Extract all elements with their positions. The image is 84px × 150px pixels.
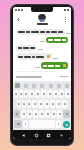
button[interactable] [14, 90, 18, 98]
button[interactable] [56, 100, 61, 108]
button[interactable] [13, 37, 68, 43]
button[interactable] [62, 100, 67, 108]
button[interactable] [33, 110, 38, 118]
button[interactable]: Recent apps [45, 132, 51, 138]
button[interactable] [50, 100, 55, 108]
button[interactable] [38, 100, 43, 108]
button[interactable] [41, 90, 46, 98]
button[interactable] [16, 45, 43, 51]
button[interactable] [19, 90, 23, 98]
button[interactable] [39, 110, 44, 118]
button[interactable]: Back [20, 132, 26, 138]
button[interactable] [14, 120, 22, 128]
button[interactable] [27, 100, 31, 108]
button[interactable] [63, 110, 70, 118]
button[interactable]: Google [15, 83, 20, 88]
button[interactable] [47, 90, 52, 98]
button[interactable] [27, 110, 32, 118]
button[interactable] [16, 29, 71, 35]
button[interactable] [13, 62, 68, 69]
button[interactable] [35, 90, 40, 98]
button[interactable]: Hide keyboard [58, 132, 64, 138]
button[interactable]: Back [15, 16, 22, 23]
button[interactable]: Contact avatar [38, 14, 46, 22]
button[interactable] [23, 120, 28, 128]
button[interactable] [16, 71, 62, 72]
button[interactable] [44, 100, 49, 108]
button[interactable] [45, 110, 50, 118]
button[interactable] [16, 72, 68, 81]
button[interactable] [56, 120, 61, 128]
button[interactable] [17, 100, 21, 108]
button[interactable] [32, 100, 37, 108]
button[interactable] [16, 53, 58, 60]
button[interactable] [51, 110, 56, 118]
button[interactable]: More options [62, 16, 69, 23]
button[interactable] [24, 90, 28, 98]
button[interactable] [53, 90, 58, 98]
button[interactable]: Send [62, 120, 70, 128]
button[interactable] [14, 110, 20, 118]
button[interactable] [22, 100, 26, 108]
button[interactable] [59, 90, 64, 98]
button[interactable]: Home [33, 132, 39, 138]
button[interactable] [65, 90, 70, 98]
button[interactable] [57, 110, 62, 118]
button[interactable] [21, 110, 26, 118]
button[interactable] [29, 90, 34, 98]
